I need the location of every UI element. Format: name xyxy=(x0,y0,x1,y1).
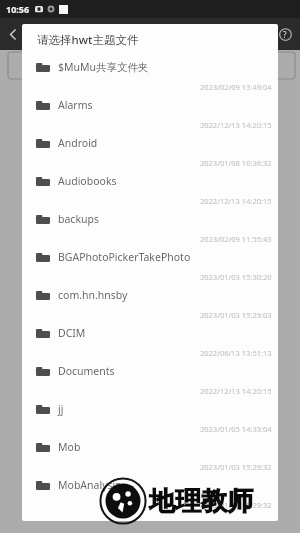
button[interactable]: DCIM xyxy=(22,322,278,360)
staticText: DCIM xyxy=(58,326,86,340)
staticText: 2023/02/09 11:55:43 xyxy=(200,234,272,244)
button[interactable]: com.hn.hnsby xyxy=(22,284,278,322)
button[interactable]: MobAnalysis xyxy=(22,474,278,512)
staticText: 2023/01/03 15:29:32 xyxy=(200,462,272,472)
staticText: 2023/01/05 14:33:04 xyxy=(200,424,272,434)
button[interactable]: jj xyxy=(22,398,278,436)
staticText: 2023/01/03 15:29:03 xyxy=(200,310,272,320)
button[interactable]: BGAPhotoPickerTakePhoto xyxy=(22,246,278,284)
button[interactable]: Alarms xyxy=(22,94,278,132)
staticText: 2023/02/09 13:49:04 xyxy=(200,82,272,92)
staticText: 地理教师 xyxy=(149,485,253,518)
staticText: Android xyxy=(58,136,98,150)
staticText: 2022/12/13 14:20:15 xyxy=(200,196,272,206)
button[interactable]: Back xyxy=(2,23,24,45)
staticText: 2023/01/08 10:36:32 xyxy=(200,158,272,168)
button[interactable]: Android xyxy=(22,132,278,170)
button[interactable]: $MuMu共享文件夹 xyxy=(22,56,278,94)
button[interactable]: backups xyxy=(22,208,278,246)
staticText: 请选择hwt主题文件 xyxy=(37,32,139,48)
staticText: Alarms xyxy=(58,98,93,112)
staticText: 2022/06/13 13:51:13 xyxy=(200,348,272,358)
button[interactable]: Audiobooks xyxy=(22,170,278,208)
staticText: 2022/12/13 14:20:15 xyxy=(200,386,272,396)
staticText: jj xyxy=(58,402,64,416)
staticText: 2023/01/03 15:29:32 xyxy=(200,500,272,510)
staticText: ? xyxy=(283,29,287,40)
staticText: com.hn.hnsby xyxy=(58,288,128,302)
staticText: Audiobooks xyxy=(58,174,117,188)
button[interactable]: Help xyxy=(274,23,296,45)
staticText: 2022/12/13 14:20:15 xyxy=(200,120,272,130)
button[interactable]: Mob xyxy=(22,436,278,474)
staticText: backups xyxy=(58,212,99,226)
button[interactable]: Documents xyxy=(22,360,278,398)
staticText: $MuMu共享文件夹 xyxy=(58,60,149,74)
staticText: 10:56 xyxy=(6,3,30,15)
staticText: Documents xyxy=(58,364,115,378)
staticText: 2023/01/03 15:30:20 xyxy=(200,272,272,282)
staticText: BGAPhotoPickerTakePhoto xyxy=(58,250,191,264)
staticText: Mob xyxy=(58,440,81,454)
staticText: MobAnalysis xyxy=(58,478,121,492)
